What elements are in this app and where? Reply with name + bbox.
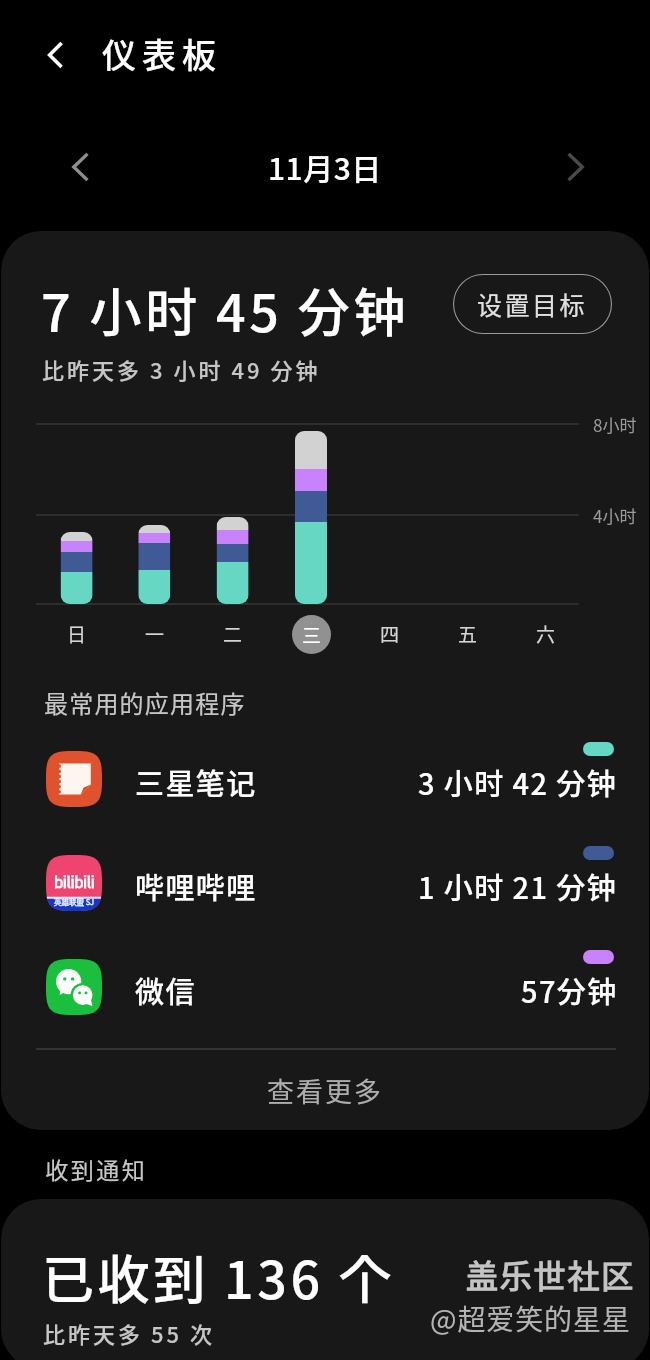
staticText: 比昨天多 3 小时 49 分钟	[42, 353, 321, 385]
button[interactable]: 查看更多	[1, 1050, 649, 1130]
button[interactable]: Next day	[546, 137, 606, 197]
button[interactable]: 一	[135, 614, 174, 653]
button[interactable]: Previous day	[50, 137, 110, 197]
staticText: 4小时	[593, 503, 637, 528]
staticText: 五	[458, 620, 478, 648]
button[interactable]: 四	[370, 614, 409, 653]
button[interactable]: 三	[292, 615, 331, 654]
staticText: bilibili	[54, 871, 95, 893]
staticText: 已收到 136 个	[42, 1239, 395, 1314]
button[interactable]: 微信	[1, 959, 649, 1064]
staticText: 盖乐世社区	[466, 1251, 636, 1297]
button[interactable]: 二	[213, 614, 252, 653]
staticText: 11月3日	[268, 145, 382, 188]
staticText: 设置目标	[477, 286, 588, 322]
staticText: 一	[145, 620, 165, 648]
staticText: 1 小时 21 分钟	[418, 865, 618, 907]
staticText: 仪表板	[102, 29, 222, 78]
button[interactable]: 五	[448, 614, 487, 653]
staticText: 3 小时 42 分钟	[418, 761, 618, 803]
staticText: 六	[536, 620, 556, 648]
button[interactable]: 三星笔记	[1, 751, 649, 856]
staticText: 英雄联盟 SJ	[54, 896, 95, 907]
staticText: 四	[380, 620, 400, 648]
staticText: 最常用的应用程序	[44, 685, 246, 720]
staticText: 微信	[135, 969, 196, 1011]
staticText: 7 小时 45 分钟	[41, 272, 410, 347]
staticText: 57分钟	[521, 969, 618, 1011]
staticText: 日	[67, 620, 87, 648]
staticText: 三	[302, 621, 322, 649]
staticText: @超爱笑的星星	[430, 1298, 631, 1339]
button[interactable]: 设置目标	[453, 274, 612, 334]
staticText: 查看更多	[267, 1071, 383, 1110]
button[interactable]: 日	[57, 614, 96, 653]
button[interactable]: 六	[526, 614, 565, 653]
staticText: 哔哩哔哩	[135, 865, 257, 907]
staticText: 三星笔记	[135, 761, 257, 803]
button[interactable]: bilibili	[1, 855, 649, 960]
staticText: 收到通知	[44, 1152, 146, 1185]
staticText: 比昨天多 55 次	[43, 1317, 215, 1349]
staticText: 8小时	[593, 412, 637, 437]
staticText: 二	[223, 620, 243, 648]
button[interactable]: Back	[26, 26, 83, 83]
